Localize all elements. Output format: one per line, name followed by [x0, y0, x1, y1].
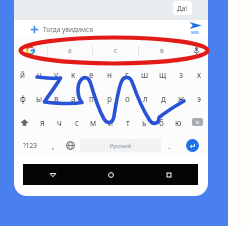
button[interactable]: Enter	[177, 134, 208, 157]
button[interactable]: ф	[14, 86, 31, 110]
staticText: э	[197, 93, 201, 104]
staticText: щ	[159, 69, 167, 80]
button[interactable]: х	[190, 62, 208, 86]
button[interactable]: м	[85, 110, 102, 134]
staticText: х	[197, 69, 202, 80]
staticText: е	[89, 69, 94, 80]
staticText: б	[159, 117, 164, 128]
button[interactable]: ж	[172, 86, 190, 110]
button[interactable]: р	[100, 86, 118, 110]
button[interactable]: Add attachment	[28, 23, 40, 35]
button[interactable]: Home	[82, 164, 140, 185]
staticText: ь	[142, 117, 147, 128]
button[interactable]: з	[172, 62, 190, 86]
button[interactable]: Voice input	[184, 38, 208, 62]
button[interactable]: ю	[170, 110, 187, 134]
staticText: г	[125, 69, 129, 80]
staticText: ы	[36, 93, 43, 104]
button[interactable]: Change language	[61, 134, 80, 157]
staticText: в	[160, 46, 164, 55]
staticText: ф	[20, 93, 26, 104]
button[interactable]: о	[118, 86, 136, 110]
staticText: д	[161, 93, 166, 104]
button[interactable]: у	[48, 62, 65, 86]
button[interactable]: Send	[184, 20, 206, 38]
button[interactable]: Recents	[140, 164, 198, 185]
staticText: ?123	[23, 141, 37, 150]
staticText: о	[125, 93, 130, 104]
staticText: Русский	[110, 142, 132, 149]
button[interactable]: в	[139, 38, 184, 62]
staticText: п	[89, 93, 94, 104]
button[interactable]: п	[82, 86, 100, 110]
staticText: ш	[141, 69, 149, 80]
button[interactable]: а	[48, 38, 92, 62]
button[interactable]: ч	[51, 110, 68, 134]
staticText: н	[107, 69, 112, 80]
staticText: м	[90, 117, 97, 128]
button[interactable]: ь	[136, 110, 153, 134]
staticText: Да!	[177, 4, 188, 13]
button[interactable]: н	[100, 62, 118, 86]
button[interactable]: ?123	[14, 134, 45, 157]
staticText: ц	[37, 69, 42, 80]
staticText: т	[126, 117, 130, 128]
staticText: с	[75, 117, 79, 128]
button[interactable]: д	[154, 86, 172, 110]
button[interactable]: в	[48, 86, 65, 110]
button[interactable]: э	[190, 86, 208, 110]
staticText: й	[20, 69, 25, 80]
button[interactable]: .	[161, 134, 177, 157]
button[interactable]: ,	[45, 134, 61, 157]
button[interactable]: й	[14, 62, 31, 86]
button[interactable]: Google search	[14, 38, 47, 62]
staticText: и	[108, 117, 113, 128]
staticText: а	[68, 46, 72, 55]
button[interactable]: ы	[31, 86, 48, 110]
button[interactable]: ц	[31, 62, 48, 86]
staticText: ,	[52, 140, 55, 151]
staticText: .	[168, 140, 171, 151]
staticText: у	[54, 69, 59, 80]
staticText: я	[40, 117, 45, 128]
button[interactable]: т	[119, 110, 136, 134]
staticText: с	[114, 46, 118, 55]
button[interactable]: и	[102, 110, 119, 134]
button[interactable]: а	[65, 86, 82, 110]
button[interactable]: с	[93, 38, 138, 62]
staticText: к	[71, 69, 76, 80]
button[interactable]: Да!	[173, 1, 192, 15]
button[interactable]: Русский	[80, 139, 161, 152]
staticText: SMS	[191, 30, 200, 35]
button[interactable]: Shift	[14, 110, 34, 134]
button[interactable]: ш	[136, 62, 154, 86]
staticText: л	[143, 93, 148, 104]
staticText: Тогда увидимся	[43, 25, 93, 34]
button[interactable]: Back	[23, 164, 82, 185]
button[interactable]: Backspace	[187, 110, 208, 134]
button[interactable]: е	[82, 62, 100, 86]
button[interactable]: г	[118, 62, 136, 86]
button[interactable]: я	[34, 110, 51, 134]
button[interactable]: к	[65, 62, 82, 86]
button[interactable]: с	[68, 110, 85, 134]
button[interactable]: щ	[154, 62, 172, 86]
staticText: ю	[175, 117, 182, 128]
staticText: р	[107, 93, 112, 104]
button[interactable]: л	[136, 86, 154, 110]
staticText: ж	[178, 93, 185, 104]
staticText: з	[179, 69, 183, 80]
staticText: а	[71, 93, 76, 104]
staticText: в	[54, 93, 59, 104]
button[interactable]: б	[153, 110, 170, 134]
staticText: ч	[57, 117, 62, 128]
